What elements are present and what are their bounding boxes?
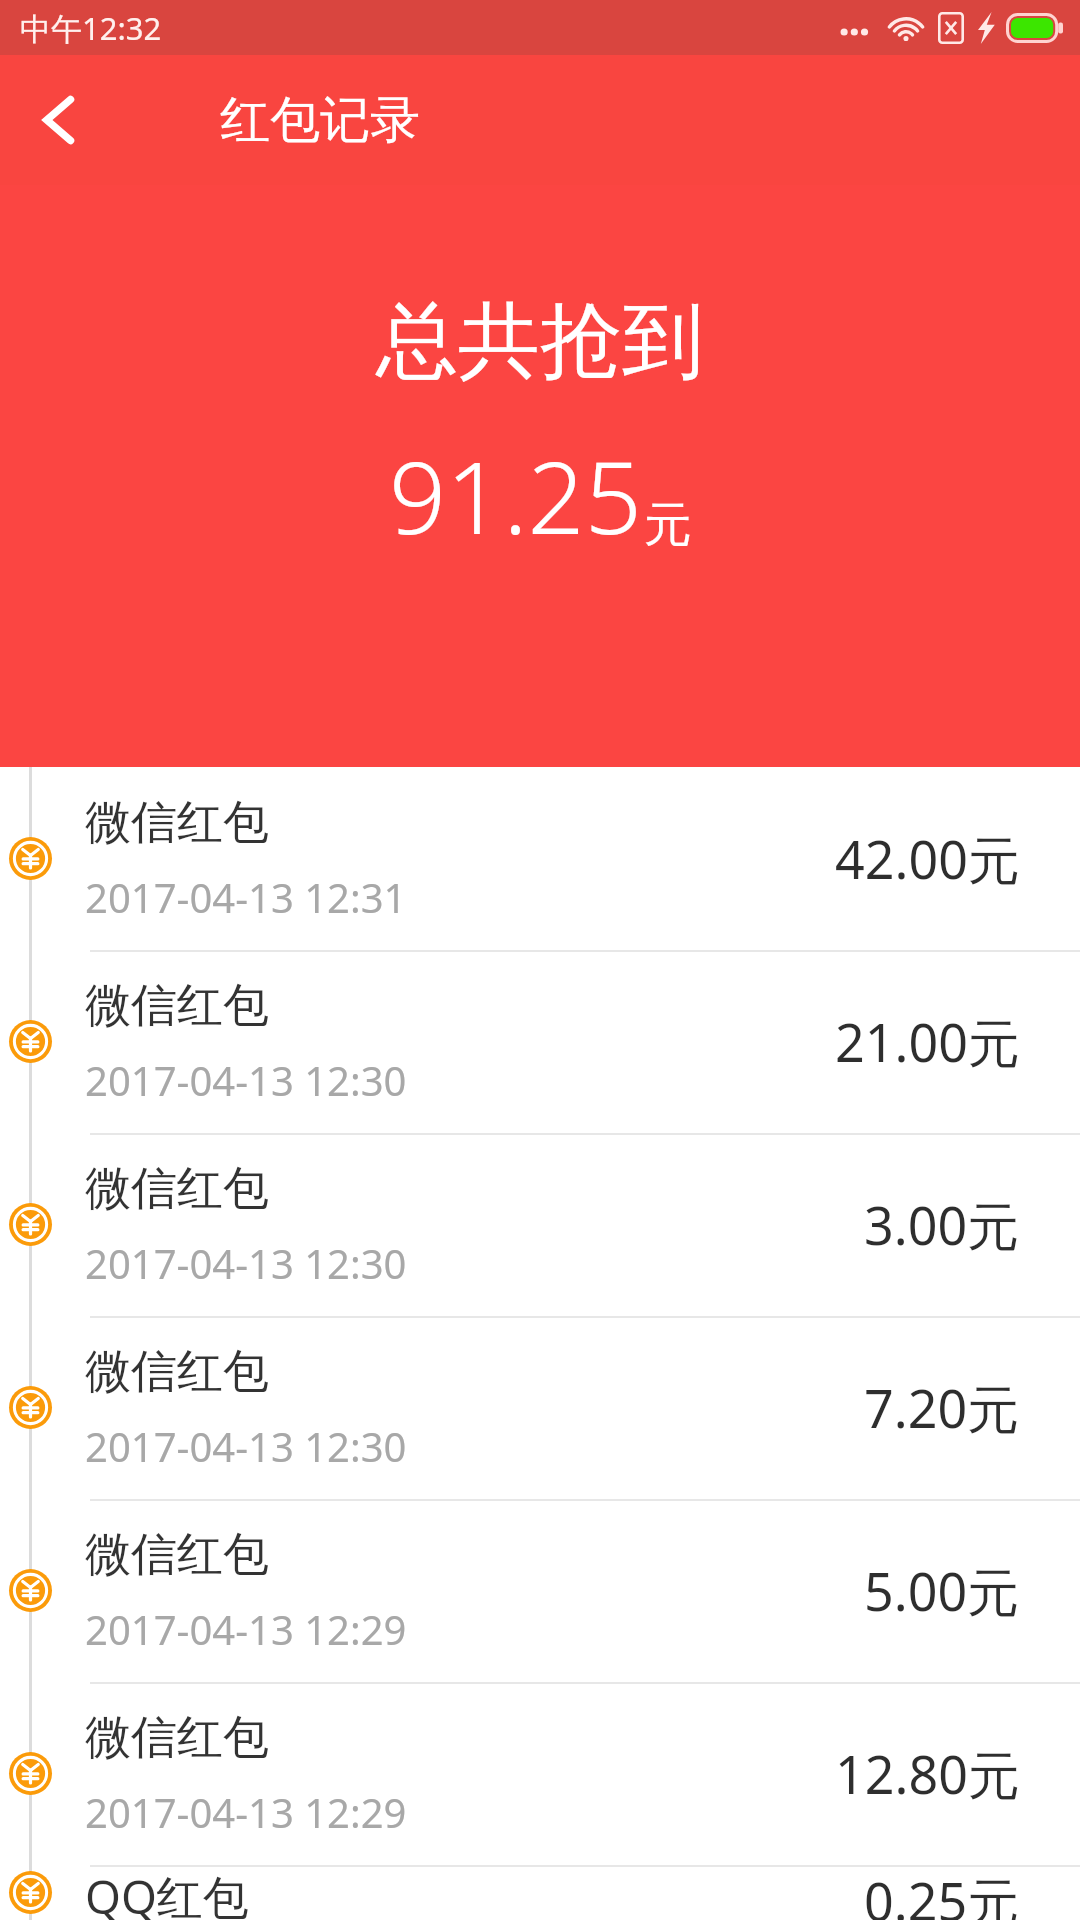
staticText: 21.00元 (835, 1006, 1020, 1077)
button[interactable]: 微信红包 (0, 1133, 1080, 1316)
staticText: 微信红包 (85, 977, 269, 1035)
staticText: 2017-04-13 12:29 (85, 1785, 407, 1839)
button[interactable]: 微信红包 (0, 1499, 1080, 1682)
staticText: 3.00元 (864, 1189, 1020, 1260)
staticText: 2017-04-13 12:29 (85, 1602, 407, 1656)
staticText: 微信红包 (85, 1526, 269, 1584)
button[interactable]: 微信红包 (0, 1316, 1080, 1499)
staticText: 2017-04-13 12:30 (85, 1236, 407, 1290)
staticText: 总共抢到 (376, 290, 704, 393)
staticText: 中午12:32 (20, 7, 162, 49)
staticText: 红包记录 (220, 89, 420, 152)
staticText: 微信红包 (85, 1343, 269, 1401)
staticText: 微信红包 (85, 1160, 269, 1218)
staticText: 42.00元 (835, 823, 1020, 894)
staticText: 5.00元 (864, 1555, 1020, 1626)
staticText: 2017-04-13 12:30 (85, 1419, 407, 1473)
button[interactable]: QQ红包 (0, 1865, 1080, 1920)
staticText: 7.20元 (864, 1372, 1020, 1443)
staticText: 2017-04-13 12:31 (85, 870, 407, 924)
button[interactable]: 微信红包 (0, 1682, 1080, 1865)
staticText: 0.25元 (864, 1865, 1020, 1920)
staticText: 微信红包 (85, 1709, 269, 1767)
staticText: QQ红包 (85, 1865, 249, 1920)
button[interactable]: 微信红包 (0, 950, 1080, 1133)
button[interactable]: 微信红包 (0, 767, 1080, 950)
button[interactable]: Back (0, 61, 118, 179)
staticText: 2017-04-13 12:30 (85, 1053, 407, 1107)
staticText: 元 (644, 495, 692, 555)
staticText: 91.25 (389, 427, 642, 563)
staticText: 微信红包 (85, 794, 269, 852)
staticText: 12.80元 (835, 1738, 1020, 1809)
